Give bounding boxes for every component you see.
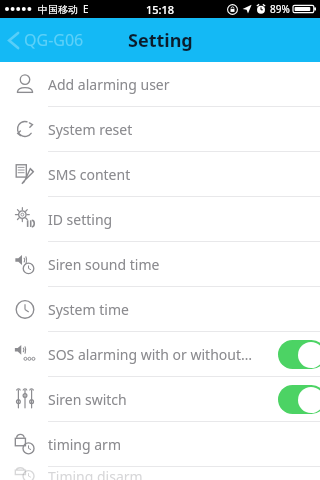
- staticText: E: [83, 2, 89, 16]
- button[interactable]: System reset: [0, 107, 320, 151]
- button[interactable]: System time: [0, 287, 320, 331]
- staticText: 89%: [270, 2, 290, 16]
- staticText: SMS content: [48, 165, 131, 184]
- button[interactable]: Toggle Siren switch: [278, 385, 320, 414]
- staticText: Add alarming user: [48, 75, 170, 94]
- button[interactable]: Siren switch: [0, 377, 320, 421]
- button[interactable]: Siren sound time: [0, 242, 320, 286]
- staticText: Siren switch: [48, 390, 127, 409]
- button[interactable]: ID setting: [0, 197, 320, 241]
- staticText: QG-G06: [24, 29, 84, 51]
- button[interactable]: Add alarming user: [0, 62, 320, 106]
- staticText: 中国移动: [38, 3, 78, 16]
- staticText: Setting: [128, 28, 193, 53]
- staticText: ID setting: [48, 210, 113, 229]
- button[interactable]: timing arm: [0, 422, 320, 466]
- staticText: Timing disarm: [48, 467, 143, 480]
- staticText: System time: [48, 300, 129, 319]
- staticText: Siren sound time: [48, 255, 160, 274]
- button[interactable]: QG-G06: [4, 25, 88, 55]
- button[interactable]: SOS alarming with or without…: [0, 332, 320, 376]
- button[interactable]: Toggle SOS alarming with or without…: [278, 340, 320, 369]
- button[interactable]: SMS content: [0, 152, 320, 196]
- staticText: timing arm: [48, 435, 121, 454]
- button[interactable]: Timing disarm: [0, 467, 320, 480]
- staticText: SOS alarming with or without…: [48, 345, 253, 364]
- staticText: System reset: [48, 120, 133, 139]
- staticText: 15:18: [146, 2, 175, 17]
